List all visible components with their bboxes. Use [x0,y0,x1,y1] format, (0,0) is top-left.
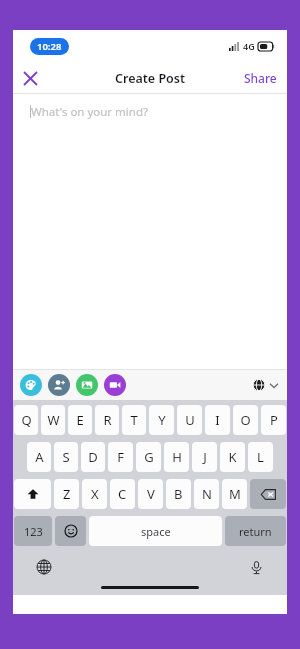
button[interactable]: G [136,442,161,472]
staticText: A [35,448,44,466]
staticText: Create Post [115,70,186,87]
staticText: L [257,448,264,466]
button[interactable]: H [164,442,189,472]
button[interactable]: N [194,479,219,509]
button[interactable]: Change keyboard language [33,556,55,578]
button[interactable]: Close [13,62,47,94]
button[interactable]: Voice input [245,556,267,578]
button[interactable]: 123 [14,516,52,546]
button[interactable]: E [68,405,92,435]
button[interactable]: Y [149,405,174,435]
button[interactable]: space [89,516,222,546]
staticText: O [240,411,251,429]
button[interactable]: O [233,405,258,435]
staticText: V [147,485,155,503]
staticText: Share [244,70,277,86]
staticText: 10:28 [37,40,62,53]
button[interactable]: R [95,405,119,435]
button[interactable]: What's on your mind? [13,94,287,369]
button[interactable]: V [138,479,163,509]
staticText: H [172,448,182,466]
staticText: Q [21,411,32,429]
staticText: S [62,448,70,466]
button[interactable]: U [177,405,202,435]
button[interactable]: Audience: Public [253,379,278,391]
staticText: C [118,485,127,503]
staticText: N [202,485,212,503]
button[interactable]: D [81,442,105,472]
button[interactable]: Shift [14,479,51,509]
staticText: return [239,524,272,539]
button[interactable]: C [110,479,135,509]
button[interactable]: M [222,479,247,509]
staticText: X [91,485,99,503]
button[interactable]: Emoji [55,516,86,546]
button[interactable]: Backspace [250,479,286,509]
button[interactable]: Share [234,64,287,92]
button[interactable]: W [41,405,65,435]
staticText: T [130,411,138,429]
button[interactable]: K [220,442,245,472]
button[interactable]: P [261,405,286,435]
staticText: R [103,411,112,429]
staticText: K [228,448,237,466]
button[interactable]: A [27,442,51,472]
button[interactable]: J [192,442,217,472]
staticText: U [185,411,195,429]
staticText: 4G [243,40,255,52]
button[interactable]: B [166,479,191,509]
button[interactable]: Photo [76,374,98,396]
staticText: G [144,448,154,466]
staticText: What's on your mind? [31,104,148,120]
staticText: W [47,411,60,429]
button[interactable]: X [82,479,107,509]
staticText: J [203,448,207,466]
staticText: E [76,411,84,429]
staticText: 123 [24,524,43,539]
button[interactable]: return [225,516,286,546]
button[interactable]: F [108,442,133,472]
staticText: F [117,448,124,466]
button[interactable]: Tag people [48,374,70,396]
staticText: I [215,411,220,429]
staticText: D [88,448,98,466]
button[interactable]: Video [104,374,126,396]
staticText: P [270,411,278,429]
button[interactable]: T [122,405,146,435]
button[interactable]: Q [14,405,38,435]
staticText: Y [158,411,166,429]
staticText: B [174,485,183,503]
staticText: M [229,485,241,503]
staticText: Z [63,485,71,503]
button[interactable]: Background color [20,374,42,396]
staticText: space [141,524,171,539]
button[interactable]: L [248,442,273,472]
button[interactable]: S [54,442,78,472]
button[interactable]: I [205,405,230,435]
button[interactable]: Z [54,479,79,509]
